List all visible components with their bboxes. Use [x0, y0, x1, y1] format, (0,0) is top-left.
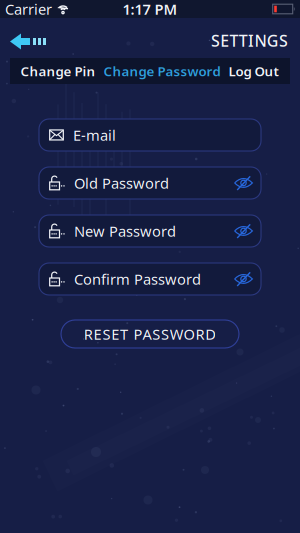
- staticText: New Password: [74, 221, 176, 241]
- staticText: Old Password: [74, 173, 169, 193]
- staticText: 1:17 PM: [122, 0, 177, 19]
- staticText: Confirm Password: [74, 269, 201, 289]
- button[interactable]: New Password: [39, 215, 261, 247]
- staticText: Change Password: [103, 62, 220, 80]
- button[interactable]: RESET PASSWORD: [61, 320, 239, 348]
- button[interactable]: Back: [0, 26, 46, 49]
- button[interactable]: Show password: [234, 273, 261, 285]
- button[interactable]: Show password: [234, 177, 261, 189]
- staticText: Change Pin: [20, 62, 95, 80]
- button[interactable]: Change Password: [103, 58, 220, 84]
- staticText: Log Out: [228, 62, 278, 80]
- staticText: SETTINGS: [211, 30, 288, 51]
- button[interactable]: Change Pin: [4, 58, 95, 84]
- button[interactable]: Log Out: [228, 58, 295, 84]
- button[interactable]: Show password: [234, 225, 261, 237]
- staticText: Carrier: [5, 0, 52, 19]
- staticText: RESET PASSWORD: [84, 324, 216, 344]
- button[interactable]: E-mail: [39, 119, 261, 151]
- button[interactable]: Confirm Password: [39, 263, 261, 295]
- button[interactable]: Old Password: [39, 167, 261, 199]
- staticText: E-mail: [73, 125, 116, 145]
